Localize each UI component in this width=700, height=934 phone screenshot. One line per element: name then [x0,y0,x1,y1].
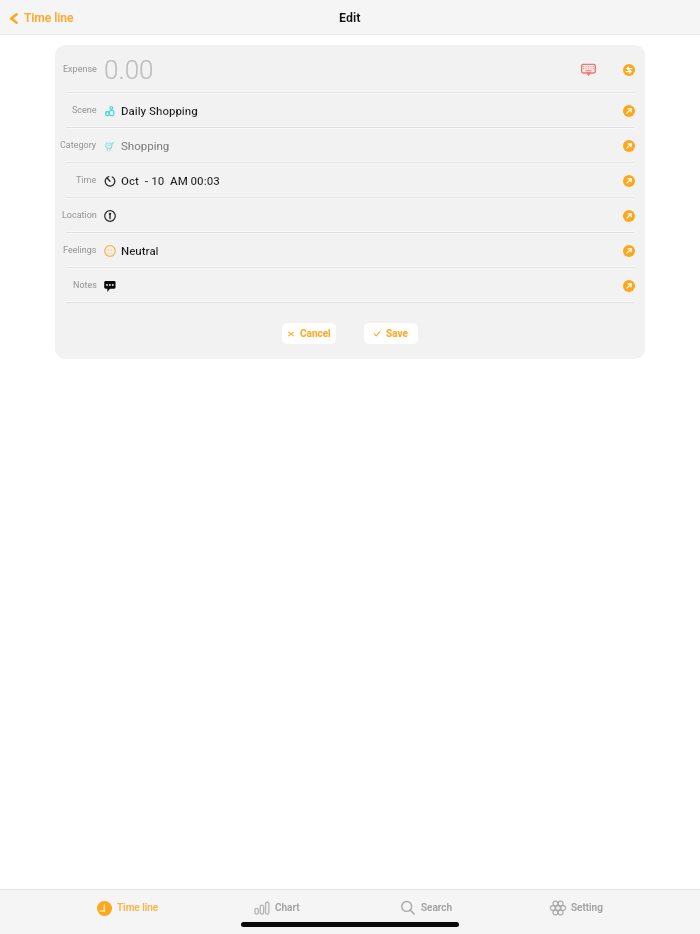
button[interactable]: Swap values [623,64,635,76]
staticText: Search [421,902,453,914]
button[interactable]: Time [55,163,645,198]
staticText: Oct - 10 AM 00:03 [121,174,220,187]
button[interactable]: Chart [202,890,351,925]
button[interactable]: Feelings [55,233,645,268]
button[interactable]: Category [55,128,645,163]
button[interactable]: Open picker [623,105,635,117]
staticText: Category [60,140,97,151]
button[interactable]: Hide keyboard [579,60,598,79]
button[interactable]: Open picker [623,245,635,257]
staticText: Save [386,328,408,340]
button[interactable]: Time line [0,7,84,29]
button[interactable]: Open picker [623,175,635,187]
staticText: Notes [73,280,97,291]
staticText: Shopping [121,139,170,152]
button[interactable]: Setting [501,890,651,925]
staticText: Scene [72,105,97,116]
staticText: Time line [117,902,159,914]
button[interactable]: Notes [55,268,645,303]
button[interactable]: Scene [55,93,645,128]
staticText: Time line [24,11,74,25]
button[interactable]: Cancel [282,323,336,344]
staticText: 0.00 [104,55,154,85]
button[interactable]: Open picker [623,210,635,222]
staticText: Neutral [121,244,159,257]
staticText: Cancel [300,328,331,340]
button[interactable]: Save [364,323,418,344]
button[interactable]: Location [55,198,645,233]
button[interactable]: Open picker [623,140,635,152]
button[interactable]: Open picker [623,280,635,292]
button[interactable]: Expense [55,45,645,93]
staticText: Chart [275,902,300,914]
staticText: Feelings [63,245,97,256]
staticText: Time [76,175,97,186]
staticText: Edit [339,10,361,25]
staticText: Daily Shopping [121,104,198,117]
staticText: Setting [571,902,603,914]
staticText: Location [62,210,97,221]
staticText: Expense [63,64,97,75]
button[interactable]: Search [351,890,501,925]
button[interactable]: Time line [53,890,202,925]
